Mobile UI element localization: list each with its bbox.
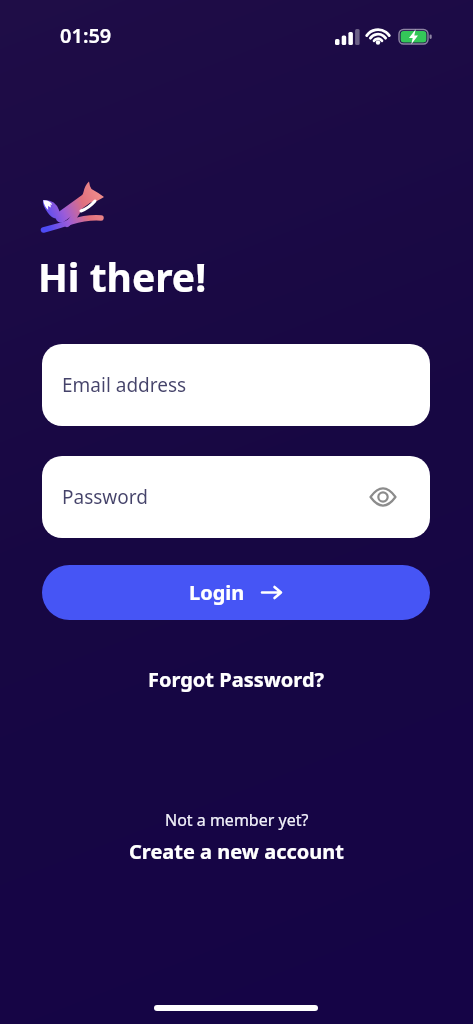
button[interactable]: Email address — [42, 344, 430, 426]
staticText: Hi there! — [38, 250, 207, 303]
button[interactable]: Password — [42, 456, 430, 538]
button[interactable]: Login — [42, 565, 430, 620]
staticText: 01:59 — [60, 22, 112, 49]
staticText: Email address — [62, 372, 187, 398]
button[interactable] — [369, 488, 397, 506]
button[interactable]: Forgot Password? — [148, 666, 325, 693]
staticText: Login — [189, 579, 245, 606]
staticText: Not a member yet? — [165, 809, 309, 831]
staticText: Password — [62, 484, 148, 510]
button[interactable]: Create a new account — [129, 838, 344, 865]
